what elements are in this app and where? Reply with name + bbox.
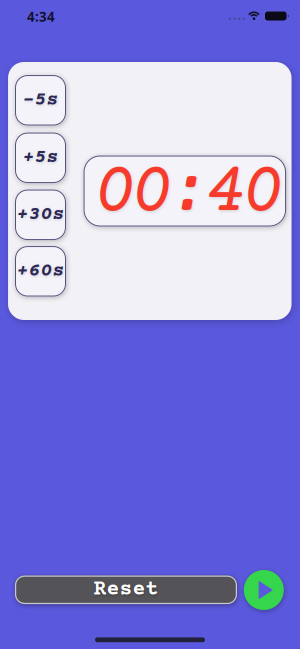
staticText: 4:34 <box>27 8 55 25</box>
staticText: +5s <box>22 147 58 169</box>
button[interactable]: +5s <box>15 133 66 183</box>
staticText: +60s <box>16 260 64 282</box>
button[interactable]: Reset <box>15 575 237 604</box>
button[interactable]: Start <box>244 570 284 610</box>
button[interactable]: +30s <box>15 190 66 240</box>
button[interactable]: +60s <box>15 246 66 297</box>
staticText: Reset <box>93 578 158 602</box>
staticText: +30s <box>16 204 64 226</box>
button[interactable]: -5s <box>15 75 66 125</box>
staticText: 00:40 <box>93 153 285 235</box>
staticText: -5s <box>22 89 58 111</box>
